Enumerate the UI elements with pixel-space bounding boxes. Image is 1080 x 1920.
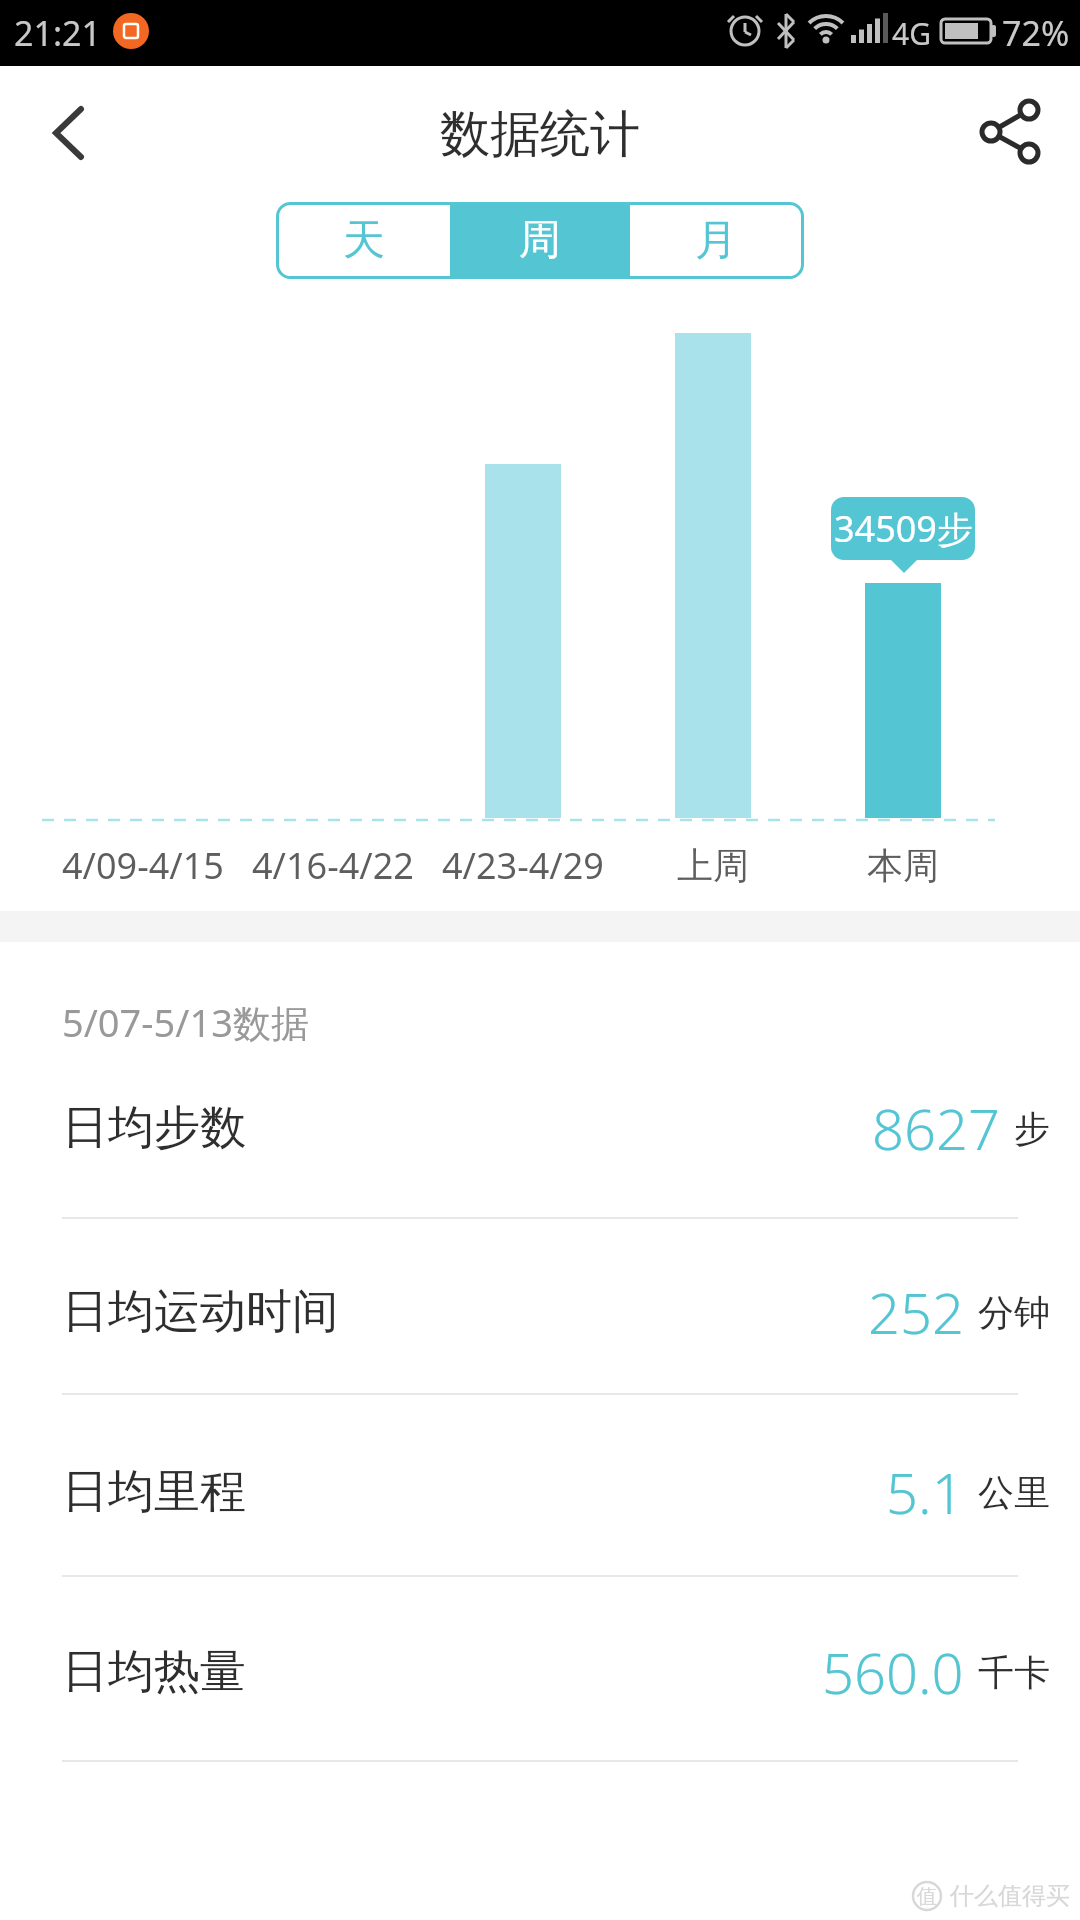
- button[interactable]: [25, 91, 115, 181]
- staticText: 步: [1014, 1106, 1050, 1151]
- staticText: 日均运动时间: [62, 1283, 338, 1341]
- staticText: 4/16-4/22: [252, 841, 414, 890]
- staticText: 4/23-4/29: [442, 841, 604, 890]
- staticText: 分钟: [978, 1290, 1050, 1335]
- staticText: 什么值得买: [950, 1881, 1070, 1911]
- button[interactable]: 天: [276, 202, 452, 279]
- staticText: 252: [868, 1274, 964, 1350]
- staticText: 5/07-5/13数据: [62, 996, 309, 1048]
- staticText: 千卡: [978, 1650, 1050, 1695]
- staticText: 日均热量: [62, 1643, 246, 1701]
- staticText: 5.1: [886, 1454, 964, 1530]
- staticText: 值: [917, 1884, 937, 1908]
- staticText: 天: [343, 214, 385, 267]
- staticText: 72%: [1002, 10, 1070, 56]
- button[interactable]: [955, 86, 1055, 186]
- staticText: 数据统计: [440, 103, 640, 166]
- staticText: 本周: [867, 843, 939, 888]
- staticText: 21:21: [14, 10, 101, 56]
- staticText: 8627: [872, 1090, 1000, 1166]
- button[interactable]: 月: [628, 202, 804, 279]
- staticText: 日均里程: [62, 1463, 246, 1521]
- staticText: 4/09-4/15: [62, 841, 224, 890]
- staticText: 日均步数: [62, 1099, 246, 1157]
- staticText: 4G: [892, 13, 931, 54]
- button[interactable]: 周: [452, 202, 628, 279]
- staticText: 公里: [978, 1470, 1050, 1515]
- staticText: 560.0: [822, 1634, 964, 1710]
- staticText: 周: [519, 214, 561, 267]
- staticText: 34509步: [834, 504, 973, 553]
- staticText: 月: [695, 214, 737, 267]
- staticText: 上周: [677, 843, 749, 888]
